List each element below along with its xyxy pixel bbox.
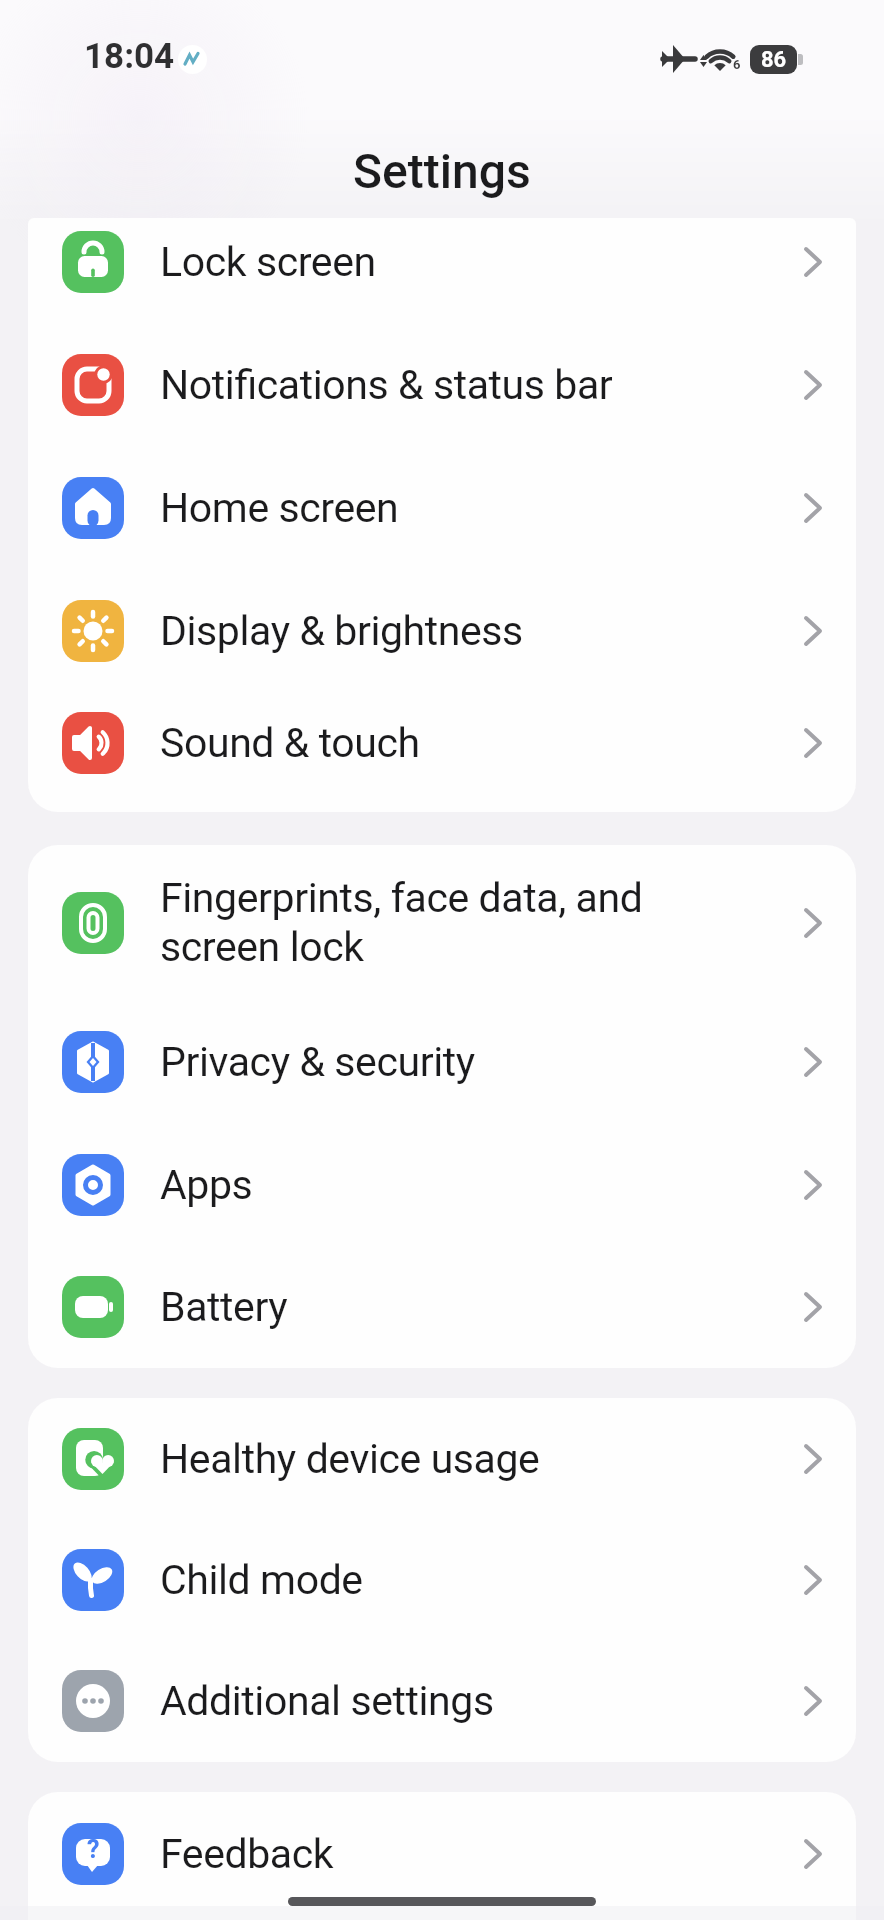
staticText: Settings: [353, 143, 531, 199]
staticText: Child mode: [160, 1556, 363, 1604]
staticText: Privacy & security: [160, 1038, 475, 1086]
button[interactable]: Privacy & security: [28, 1000, 856, 1123]
button[interactable]: Display & brightness: [28, 569, 856, 692]
button[interactable]: Fingerprints, face data, and screen lock: [28, 845, 856, 1000]
staticText: Display & brightness: [160, 607, 523, 655]
staticText: Healthy device usage: [160, 1435, 540, 1483]
staticText: Additional settings: [160, 1677, 494, 1725]
button[interactable]: ?: [28, 1792, 856, 1915]
button[interactable]: Apps: [28, 1123, 856, 1246]
button[interactable]: Sound & touch: [28, 692, 856, 794]
staticText: Lock screen: [160, 238, 376, 286]
button[interactable]: Home screen: [28, 446, 856, 569]
staticText: Notifications & status bar: [160, 361, 613, 409]
staticText: 86: [761, 47, 787, 73]
button[interactable]: Healthy device usage: [28, 1398, 856, 1519]
staticText: Sound & touch: [160, 719, 420, 767]
staticText: Fingerprints, face data, and screen lock: [160, 874, 643, 971]
button[interactable]: Battery: [28, 1246, 856, 1368]
button[interactable]: Notifications & status bar: [28, 323, 856, 446]
staticText: Battery: [160, 1283, 288, 1331]
button[interactable]: Additional settings: [28, 1640, 856, 1761]
staticText: ?: [87, 1835, 100, 1864]
staticText: 18:04: [84, 36, 175, 77]
button[interactable]: Child mode: [28, 1519, 856, 1640]
staticText: Apps: [160, 1161, 253, 1209]
staticText: 6: [733, 57, 741, 72]
staticText: Home screen: [160, 484, 399, 532]
staticText: Feedback: [160, 1830, 334, 1878]
button[interactable]: Lock screen: [28, 218, 856, 323]
